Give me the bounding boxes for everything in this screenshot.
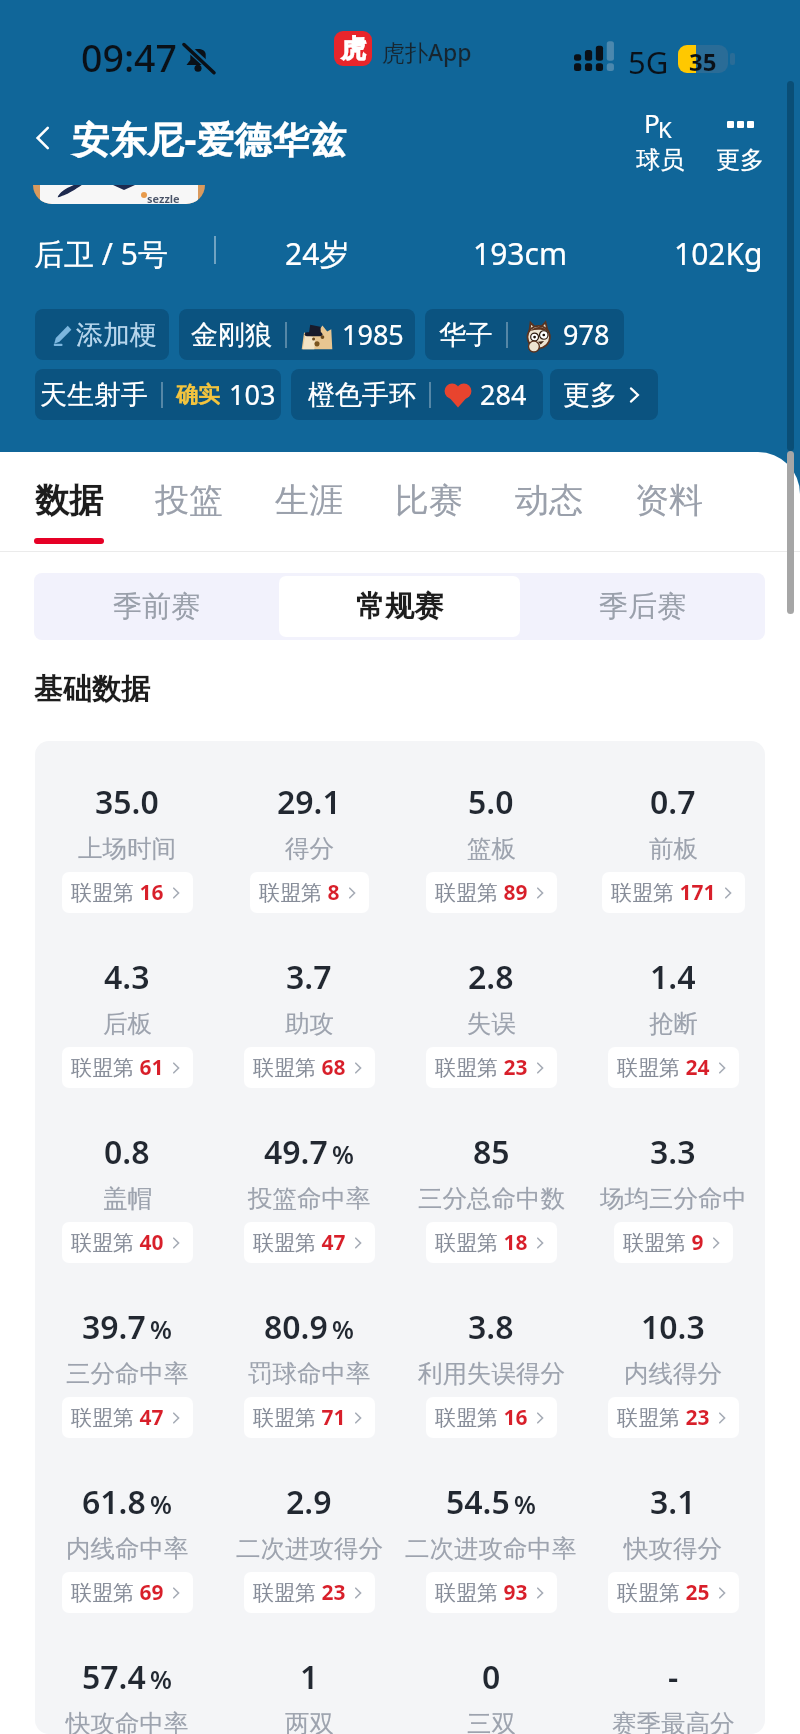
staticText: 抢断 [649,1008,698,1039]
staticText: 09:47 [81,32,177,83]
button[interactable]: 61.8 % [36,1480,218,1613]
button[interactable]: 动态 [506,469,592,531]
button[interactable]: 更多 [550,369,658,420]
staticText: 联盟第 18 [435,1228,528,1257]
button[interactable]: 54.5 % [400,1480,582,1613]
button[interactable]: 29.1 [218,780,400,913]
staticText: 虎扑App [382,36,472,67]
button[interactable]: 0.8 [36,1130,218,1263]
staticText: 39.7 % [82,1305,172,1349]
staticText: 失误 [467,1008,516,1039]
staticText: 284 [480,376,527,413]
button[interactable]: 橙色手环 [291,369,543,420]
staticText: 虎 [341,33,366,64]
button[interactable]: 80.9 % [218,1305,400,1438]
staticText: 快攻得分 [624,1533,722,1564]
staticText: 罚球命中率 [248,1358,371,1389]
button[interactable]: 3.1 [582,1480,764,1613]
button[interactable]: 添加梗 [35,309,169,360]
button[interactable]: 季前赛 [34,573,279,640]
staticText: 安东尼-爱德华兹 [72,113,347,164]
button[interactable]: 生涯 [266,469,352,531]
button[interactable]: 49.7 % [218,1130,400,1263]
button[interactable]: 1 [218,1655,400,1734]
button[interactable]: 资料 [626,469,712,531]
button[interactable]: 3.7 [218,955,400,1088]
staticText: 54.5 % [446,1480,536,1524]
button[interactable]: 虎 [334,31,372,66]
staticText: 快攻命中率 [66,1708,189,1734]
staticText: 比赛 [395,479,463,522]
button[interactable]: 华子 [425,309,624,360]
button[interactable]: 4.3 [36,955,218,1088]
staticText: 前板 [649,833,698,864]
staticText: 联盟第 47 [253,1228,346,1257]
staticText: 联盟第 23 [617,1403,710,1432]
staticText: 确实 [176,381,220,409]
button[interactable]: 35.0 [36,780,218,913]
staticText: 29.1 [277,780,341,824]
staticText: 1 [300,1655,319,1699]
staticText: 更多 [563,378,617,412]
staticText: 2.8 [468,955,514,999]
staticText: 橙色手环 [308,378,416,412]
button[interactable]: 39.7 % [36,1305,218,1438]
staticText: 49.7 % [264,1130,354,1174]
staticText: 场均三分命中 [600,1183,747,1214]
staticText: 利用失误得分 [418,1358,565,1389]
staticText: 篮板 [467,833,516,864]
button[interactable]: 1.4 [582,955,764,1088]
button[interactable]: More [697,103,783,175]
staticText: 后卫 / 5号 [34,233,168,274]
button[interactable]: 0 [400,1655,582,1734]
staticText: 0.7 [650,780,696,824]
button[interactable]: - [582,1655,764,1734]
button[interactable]: 2.8 [400,955,582,1088]
button[interactable]: 季后赛 [520,573,765,640]
button[interactable]: 5.0 [400,780,582,913]
staticText: 内线得分 [624,1358,722,1389]
other: Back [28,123,58,153]
staticText: 联盟第 16 [71,878,164,907]
button[interactable]: 数据 [26,469,112,531]
staticText: 三分命中率 [66,1358,189,1389]
staticText: 二次进攻得分 [236,1533,383,1564]
button[interactable]: 天生射手 [35,369,281,420]
staticText: 数据 [35,479,103,522]
button[interactable]: P [617,103,703,175]
button[interactable]: 常规赛 [279,573,520,640]
staticText: - [668,1655,679,1699]
button[interactable]: 投篮 [146,469,232,531]
staticText: 华子 [439,318,493,352]
button[interactable]: 85 [400,1130,582,1263]
staticText: 1.4 [650,955,696,999]
button[interactable]: Back [28,108,347,168]
button[interactable]: 10.3 [582,1305,764,1438]
staticText: 2.9 [286,1480,332,1524]
staticText: 103 [229,376,276,413]
staticText: 193cm [473,233,567,274]
staticText: 赛季最高分 [612,1708,735,1734]
staticText: 助攻 [285,1008,334,1039]
staticText: 85 [473,1130,510,1174]
staticText: 联盟第 8 [259,878,340,907]
staticText: 联盟第 171 [611,878,716,907]
staticText: 联盟第 47 [71,1403,164,1432]
button[interactable]: 0.7 [582,780,764,913]
button[interactable]: 3.3 [582,1130,764,1263]
staticText: 联盟第 61 [71,1053,164,1082]
staticText: 联盟第 23 [435,1053,528,1082]
button[interactable]: 金刚狼 [179,309,415,360]
staticText: 3.3 [650,1130,696,1174]
staticText: 添加梗 [76,318,157,352]
staticText: 基础数据 [34,671,150,708]
staticText: 24岁 [285,233,350,274]
button[interactable]: 比赛 [386,469,472,531]
button[interactable]: 2.9 [218,1480,400,1613]
other: More [727,121,754,128]
staticText: 61.8 % [82,1480,172,1524]
staticText: 联盟第 9 [623,1228,704,1257]
staticText: 两双 [285,1708,334,1734]
button[interactable]: 3.8 [400,1305,582,1438]
button[interactable]: 57.4 % [36,1655,218,1734]
